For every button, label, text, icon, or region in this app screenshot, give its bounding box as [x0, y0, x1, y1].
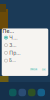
button[interactable]: Производство	[4, 49, 47, 56]
staticText: Чрезвычайно	[9, 34, 20, 41]
button[interactable]: Батарейка	[4, 57, 47, 64]
staticText: Переключение	[2, 28, 14, 34]
button[interactable]: ОК	[42, 68, 45, 72]
button[interactable]: Загрузка	[4, 42, 47, 49]
button[interactable]: Чрезвычайно	[4, 34, 47, 41]
staticText: Батарейка	[9, 58, 16, 63]
staticText: Загрузка	[9, 42, 17, 48]
staticText: ОК	[42, 68, 45, 71]
button[interactable]: ОТМЕНА	[30, 68, 37, 72]
staticText: ОТМЕНА	[30, 69, 37, 71]
staticText: Производство	[9, 50, 21, 56]
